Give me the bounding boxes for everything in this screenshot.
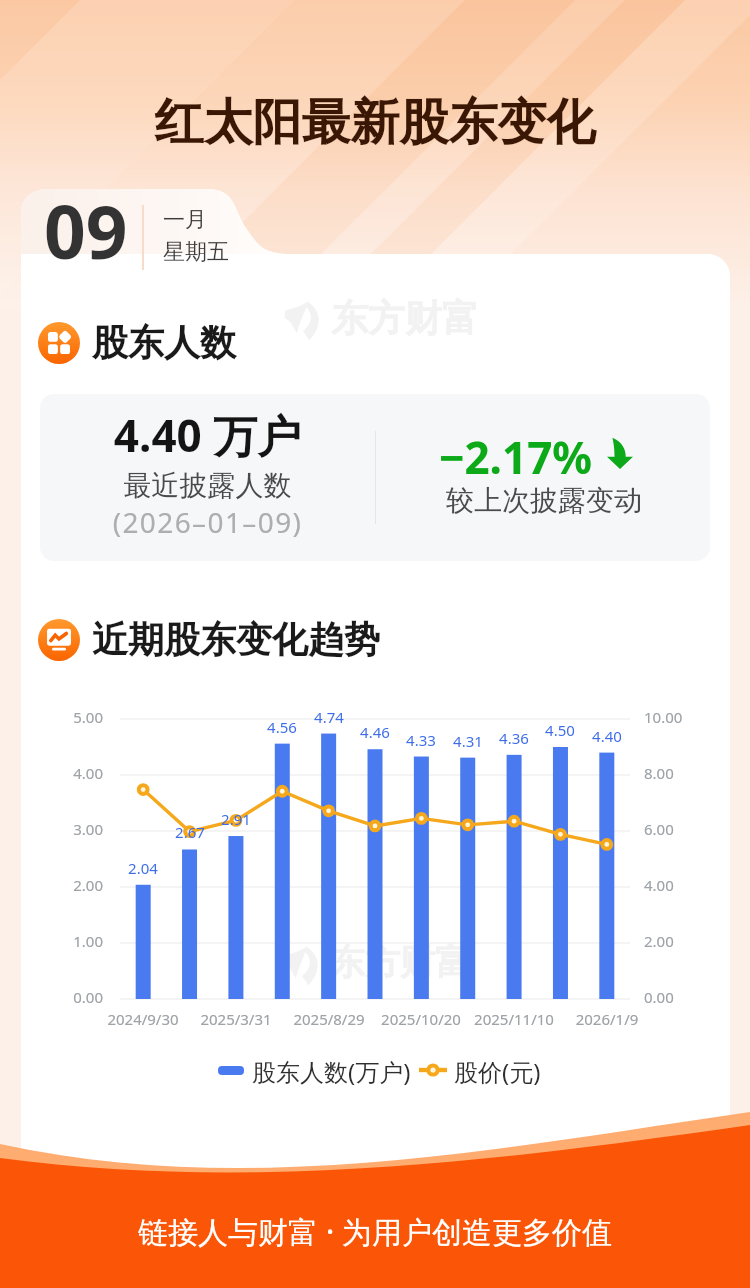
staticText: 2026/1/9 bbox=[547, 1009, 667, 1029]
staticText: 2.91 bbox=[206, 809, 266, 829]
staticText: 股价(元) bbox=[454, 1055, 541, 1085]
staticText: 8.00 bbox=[644, 763, 704, 783]
staticText: 4.50 bbox=[530, 720, 590, 740]
staticText: 2025/3/31 bbox=[176, 1009, 296, 1029]
staticText: 红太阳最新股东变化 bbox=[0, 92, 750, 154]
staticText: 2.00 bbox=[644, 931, 704, 951]
staticText: 2.00 bbox=[53, 875, 103, 895]
button[interactable]: 股东人数 bbox=[38, 320, 236, 365]
staticText: 东方财富 bbox=[330, 940, 470, 984]
staticText: 星期五 bbox=[163, 238, 229, 266]
staticText: 4.74 bbox=[299, 707, 359, 727]
staticText: 4.33 bbox=[391, 730, 451, 750]
button[interactable]: 近期股东变化趋势 bbox=[38, 617, 380, 662]
staticText: 东方财富 bbox=[331, 295, 479, 342]
staticText: 4.00 bbox=[53, 763, 103, 783]
staticText: 5.00 bbox=[53, 707, 103, 727]
staticText: 2025/10/20 bbox=[361, 1009, 481, 1029]
staticText: 4.00 bbox=[644, 875, 704, 895]
staticText: 0.00 bbox=[644, 987, 704, 1007]
staticText: 09 bbox=[44, 181, 128, 280]
button[interactable] bbox=[21, 190, 268, 266]
staticText: 较上次披露变动 bbox=[400, 483, 688, 518]
staticText: 4.36 bbox=[484, 728, 544, 748]
staticText: 4.46 bbox=[345, 722, 405, 742]
staticText: 最近披露人数 bbox=[65, 468, 350, 503]
staticText: 1.00 bbox=[53, 931, 103, 951]
staticText: 4.40 万户 bbox=[65, 405, 350, 465]
staticText: −2.17% bbox=[400, 427, 592, 487]
staticText: 2.67 bbox=[160, 822, 220, 842]
staticText: 2024/9/30 bbox=[83, 1009, 203, 1029]
staticText: 3.00 bbox=[53, 819, 103, 839]
staticText: 4.56 bbox=[252, 717, 312, 737]
staticText: (2026–01–09) bbox=[65, 503, 350, 541]
staticText: 2.04 bbox=[113, 858, 173, 878]
staticText: 6.00 bbox=[644, 819, 704, 839]
button[interactable]: 股价(元) bbox=[419, 1055, 541, 1085]
staticText: 10.00 bbox=[644, 707, 704, 727]
staticText: 4.40 bbox=[577, 726, 637, 746]
staticText: 股东人数 bbox=[92, 320, 236, 365]
staticText: 4.31 bbox=[438, 731, 498, 751]
staticText: 2025/8/29 bbox=[269, 1009, 389, 1029]
staticText: 一月 bbox=[163, 206, 207, 234]
staticText: 链接人与财富 · 为用户创造更多价值 bbox=[0, 1211, 750, 1252]
button[interactable]: 股东人数(万户) bbox=[218, 1055, 411, 1085]
staticText: 2025/11/10 bbox=[454, 1009, 574, 1029]
staticText: 股东人数(万户) bbox=[252, 1055, 411, 1085]
staticText: 0.00 bbox=[53, 987, 103, 1007]
button[interactable] bbox=[40, 394, 710, 561]
staticText: 近期股东变化趋势 bbox=[92, 617, 380, 662]
